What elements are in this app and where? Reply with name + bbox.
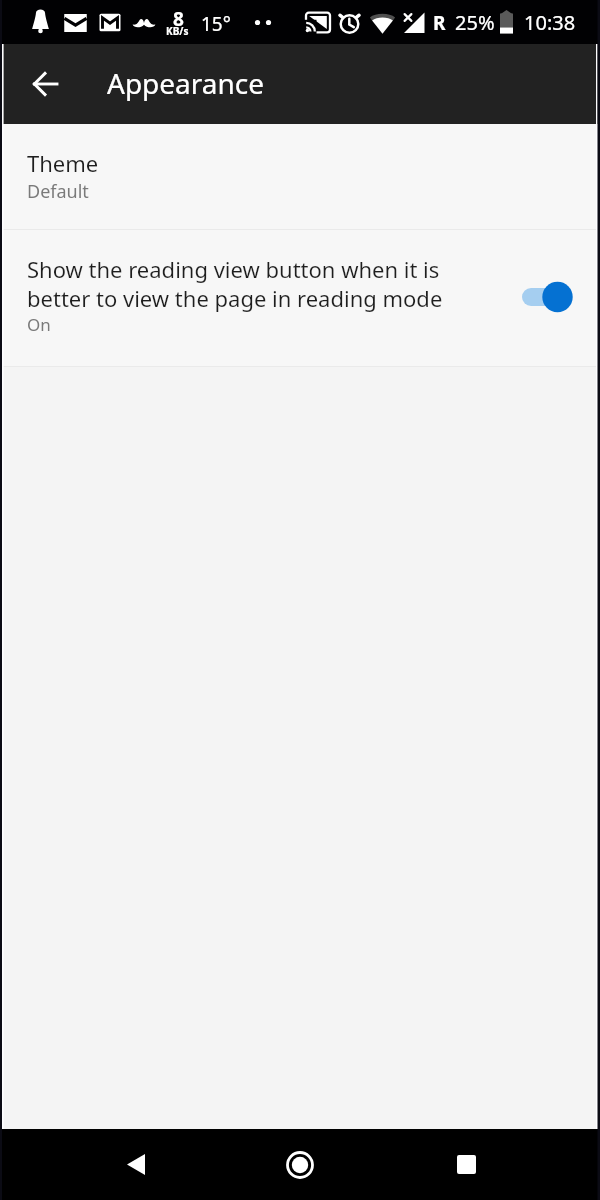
- button[interactable]: Theme: [0, 124, 600, 229]
- staticText: 25%: [455, 9, 495, 36]
- button[interactable]: Show the reading view button when it is …: [0, 230, 600, 366]
- staticText: KB/s: [166, 24, 189, 38]
- staticText: Show the reading view button when it is …: [27, 254, 467, 314]
- button[interactable]: Recents: [436, 1129, 496, 1200]
- staticText: Default: [27, 179, 89, 204]
- button[interactable]: Back: [106, 1129, 166, 1200]
- staticText: 8: [173, 6, 184, 32]
- staticText: On: [27, 313, 51, 336]
- staticText: 10:38: [524, 9, 576, 36]
- button[interactable]: Home: [270, 1129, 330, 1200]
- staticText: 15°: [201, 11, 231, 37]
- staticText: Appearance: [107, 64, 265, 102]
- staticText: R: [433, 10, 446, 36]
- button[interactable]: Toggle reading view button: [515, 267, 585, 327]
- staticText: Theme: [27, 148, 99, 178]
- button[interactable]: Back: [17, 44, 73, 124]
